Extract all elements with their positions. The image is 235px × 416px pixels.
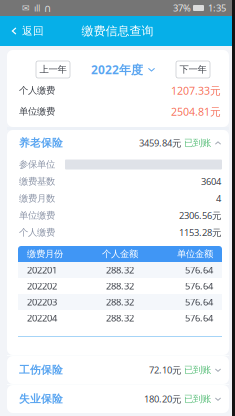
staticText: 576.64 [185,312,213,324]
button[interactable]: 上一年 [36,61,70,78]
staticText: 工伤保险 [19,363,63,376]
staticText: 缴费月数 [19,193,55,204]
staticText: 养老保险 [19,136,63,149]
button[interactable]: 工伤保险 [7,356,229,384]
staticText: 202203 [27,296,57,308]
staticText: 202202 [27,280,57,292]
staticText: 缴费基数 [19,176,55,187]
staticText: 个人缴费 [19,227,55,238]
staticText: 已到账 [181,393,211,405]
staticText: 3459.84元 [139,137,181,149]
staticText: 缴费信息查询 [81,24,153,38]
staticText: 上一年 [39,64,66,75]
staticText: 180.20元 [144,393,181,405]
staticText: 4 [216,192,221,205]
staticText: 参保单位 [19,159,55,170]
staticText: ıll [34,2,40,14]
staticText: 个人金额 [102,248,138,260]
staticText: 返回 [22,24,44,37]
staticText: 已到账 [181,137,211,149]
staticText: 2504.81元 [171,104,221,119]
staticText: 单位缴费 [19,106,55,117]
staticText: 288.32 [106,280,134,292]
staticText: 202201 [27,264,57,276]
button[interactable]: 失业保险 [7,385,229,413]
staticText: 1207.33元 [171,83,221,98]
staticText: 288.32 [106,296,134,308]
staticText: 缴费月份 [27,248,63,260]
staticText: 576.64 [185,264,213,276]
staticText: 下一年 [179,64,206,75]
button[interactable]: 下一年 [176,61,210,78]
staticText: 2022年度 [91,61,143,77]
staticText: 1153.28元 [179,226,221,239]
staticText: 已到账 [181,364,211,376]
staticText: 576.64 [185,280,213,292]
staticText: 1:35 [208,2,226,14]
staticText: ∩ [44,2,52,14]
staticText: 202204 [27,312,57,324]
button[interactable]: 返回 [0,16,55,46]
staticText: 37% [173,2,191,14]
staticText: 单位金额 [177,248,213,260]
button[interactable]: 养老保险 [7,130,229,156]
staticText: 72.10元 [149,364,181,376]
staticText: 失业保险 [19,392,63,405]
staticText: 288.32 [106,312,134,324]
staticText: 2306.56元 [179,209,221,222]
staticText: 288.32 [106,264,134,276]
staticText: 3604 [201,175,221,188]
staticText: 576.64 [185,296,213,308]
button[interactable]: 2022年度 [91,61,155,78]
staticText: ✉ [22,3,30,13]
staticText: 个人缴费 [19,85,55,96]
staticText: 单位缴费 [19,210,55,221]
